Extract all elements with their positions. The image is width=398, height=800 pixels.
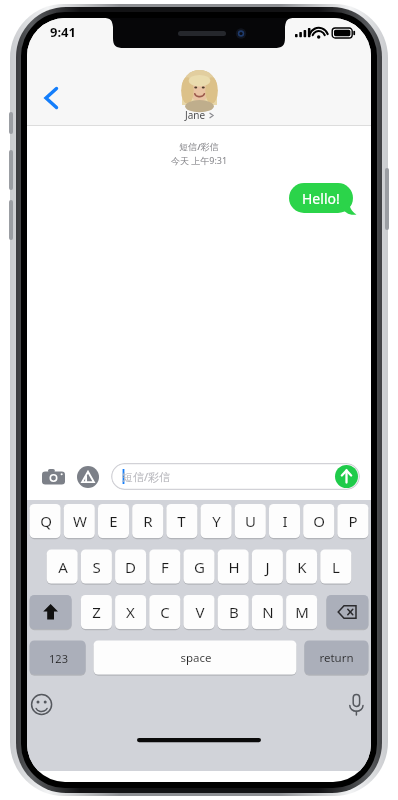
button[interactable]: Take photo bbox=[38, 462, 68, 492]
staticText: C bbox=[160, 602, 170, 622]
staticText: 今天 上午9:31 bbox=[27, 154, 371, 166]
button[interactable]: R bbox=[132, 504, 163, 538]
button[interactable]: Apps bbox=[73, 462, 103, 492]
staticText: K bbox=[297, 557, 307, 577]
button[interactable]: I bbox=[269, 504, 300, 538]
button[interactable]: Z bbox=[81, 595, 112, 629]
button[interactable]: Y bbox=[201, 504, 232, 538]
staticText: Q bbox=[40, 511, 52, 531]
button[interactable]: S bbox=[81, 550, 112, 584]
staticText: return bbox=[319, 650, 354, 666]
button[interactable]: Back bbox=[32, 80, 68, 116]
staticText: X bbox=[126, 602, 135, 622]
button[interactable]: C bbox=[149, 595, 180, 629]
staticText: F bbox=[161, 557, 169, 577]
button[interactable]: H bbox=[218, 550, 249, 584]
button[interactable]: O bbox=[303, 504, 334, 538]
staticText: H bbox=[228, 557, 240, 577]
button[interactable]: Backspace bbox=[326, 595, 368, 629]
staticText: T bbox=[177, 511, 186, 531]
button[interactable]: D bbox=[115, 550, 146, 584]
staticText: A bbox=[58, 557, 68, 577]
button[interactable]: space bbox=[94, 641, 297, 675]
staticText: U bbox=[245, 511, 256, 531]
staticText: L bbox=[332, 557, 340, 577]
button[interactable]: Shift bbox=[30, 595, 72, 629]
staticText: Z bbox=[92, 602, 101, 622]
staticText: Hello! bbox=[302, 189, 340, 208]
staticText: O bbox=[313, 511, 325, 531]
button[interactable]: B bbox=[218, 595, 249, 629]
staticText: E bbox=[109, 511, 118, 531]
button[interactable]: Emoji bbox=[30, 689, 56, 713]
staticText: space bbox=[180, 650, 212, 666]
staticText: 短信/彩信 bbox=[122, 469, 171, 484]
button[interactable]: Send bbox=[335, 465, 358, 488]
button[interactable]: Jane bbox=[182, 70, 217, 122]
staticText: R bbox=[143, 511, 153, 531]
button[interactable]: K bbox=[286, 550, 317, 584]
staticText: G bbox=[194, 557, 205, 577]
button[interactable]: A bbox=[47, 550, 78, 584]
button[interactable]: E bbox=[98, 504, 129, 538]
staticText: D bbox=[125, 557, 136, 577]
button[interactable]: Q bbox=[30, 504, 61, 538]
button[interactable]: Dictation bbox=[342, 689, 368, 713]
button[interactable]: F bbox=[149, 550, 180, 584]
button[interactable]: return bbox=[304, 641, 368, 675]
staticText: 9:41 bbox=[50, 23, 76, 41]
staticText: I bbox=[282, 511, 288, 531]
button[interactable]: P bbox=[337, 504, 368, 538]
staticText: 123 bbox=[49, 651, 68, 666]
button[interactable]: W bbox=[64, 504, 95, 538]
button[interactable]: J bbox=[252, 550, 283, 584]
button[interactable]: 短信/彩信 bbox=[111, 463, 360, 490]
staticText: Y bbox=[212, 511, 221, 531]
button[interactable]: N bbox=[252, 595, 283, 629]
button[interactable]: G bbox=[184, 550, 215, 584]
button[interactable]: M bbox=[286, 595, 317, 629]
staticText: N bbox=[262, 602, 274, 622]
button[interactable]: T bbox=[166, 504, 197, 538]
button[interactable]: X bbox=[115, 595, 146, 629]
staticText: J bbox=[265, 557, 270, 577]
button[interactable]: L bbox=[320, 550, 351, 584]
staticText: V bbox=[195, 602, 205, 622]
button[interactable]: 123 bbox=[30, 641, 86, 675]
staticText: P bbox=[348, 511, 358, 531]
staticText: 短信/彩信 bbox=[27, 140, 371, 152]
staticText: S bbox=[92, 557, 101, 577]
button[interactable]: V bbox=[184, 595, 215, 629]
button[interactable]: U bbox=[235, 504, 266, 538]
staticText: M bbox=[295, 602, 309, 622]
staticText: W bbox=[73, 511, 87, 531]
staticText: B bbox=[229, 602, 239, 622]
staticText: Jane bbox=[185, 108, 206, 122]
